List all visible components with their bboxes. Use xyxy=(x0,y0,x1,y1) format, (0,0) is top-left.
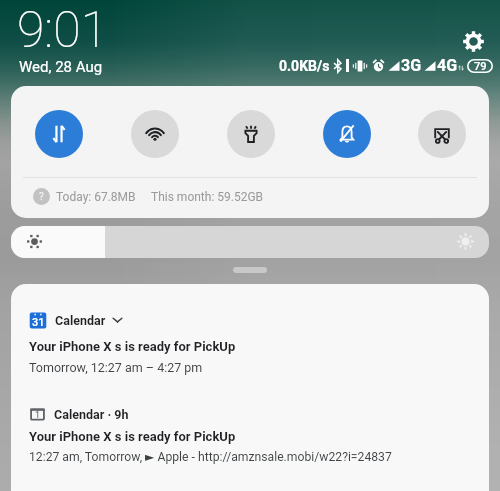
staticText: 0.0KB/s xyxy=(279,58,330,74)
staticText: Today: 67.8MB xyxy=(56,190,136,204)
staticText: Your iPhone X s is ready for PickUp xyxy=(29,339,236,354)
staticText: 4G xyxy=(437,56,458,75)
button[interactable]: Mobile data xyxy=(35,110,83,158)
staticText: Tomorrow, 12:27 am – 4:27 pm xyxy=(29,360,203,375)
staticText: 79 xyxy=(474,60,487,73)
button[interactable]: Screenshot xyxy=(418,110,466,158)
button[interactable]: 1 xyxy=(11,385,489,485)
staticText: 9:01 xyxy=(17,1,108,60)
staticText: Your iPhone X s is ready for PickUp xyxy=(29,429,236,444)
staticText: Calendar · 9h xyxy=(54,407,129,422)
staticText: Calendar xyxy=(55,313,106,328)
staticText: ? xyxy=(39,191,44,203)
button[interactable]: Brightness xyxy=(11,226,489,258)
staticText: Wed, 28 Aug xyxy=(19,58,103,76)
button[interactable]: Do not disturb xyxy=(323,110,371,158)
button[interactable]: 31 xyxy=(11,284,489,385)
staticText: 1 xyxy=(35,410,41,421)
staticText: 31 xyxy=(32,316,45,329)
staticText: 12:27 am, Tomorrow, ► Apple - http://amz… xyxy=(29,450,392,464)
button[interactable]: Wi-Fi xyxy=(131,110,179,158)
staticText: This month: 59.52GB xyxy=(151,190,264,204)
staticText: 3G xyxy=(401,56,422,75)
button[interactable]: Settings xyxy=(457,25,489,57)
button[interactable]: Flashlight xyxy=(227,110,275,158)
